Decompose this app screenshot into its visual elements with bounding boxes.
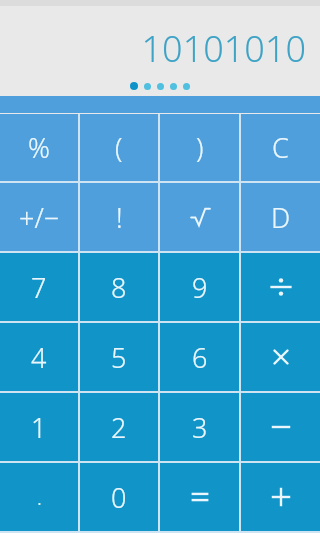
button[interactable]: 8: [80, 253, 158, 321]
staticText: 8: [111, 269, 127, 306]
staticText: 0: [111, 479, 127, 516]
button[interactable]: 10101010: [0, 24, 306, 73]
button[interactable]: ): [160, 114, 239, 181]
staticText: 5: [111, 339, 127, 376]
button[interactable]: ÷: [241, 253, 320, 321]
button[interactable]: !: [80, 183, 158, 251]
staticText: D: [271, 199, 291, 236]
button[interactable]: +/−: [0, 183, 78, 251]
button[interactable]: (: [80, 114, 158, 181]
button[interactable]: .: [0, 463, 78, 531]
staticText: !: [116, 199, 123, 236]
button[interactable]: 0: [80, 463, 158, 531]
staticText: ): [196, 129, 204, 166]
staticText: 4: [31, 339, 47, 376]
staticText: 10101010: [0, 24, 306, 73]
button[interactable]: √: [160, 183, 239, 251]
staticText: 2: [111, 409, 127, 446]
staticText: +/−: [19, 199, 60, 236]
button[interactable]: −: [241, 393, 320, 461]
button[interactable]: 7: [0, 253, 78, 321]
staticText: (: [115, 129, 123, 166]
button[interactable]: 2: [80, 393, 158, 461]
staticText: 9: [192, 269, 208, 306]
button[interactable]: 4: [0, 323, 78, 391]
button[interactable]: 5: [80, 323, 158, 391]
button[interactable]: C: [241, 114, 320, 181]
button[interactable]: 3: [160, 393, 239, 461]
button[interactable]: D: [241, 183, 320, 251]
button[interactable]: =: [160, 463, 239, 531]
staticText: 3: [192, 409, 208, 446]
button[interactable]: 1: [0, 393, 78, 461]
staticText: %: [28, 129, 50, 166]
staticText: .: [37, 484, 42, 511]
staticText: C: [272, 129, 289, 166]
button[interactable]: 9: [160, 253, 239, 321]
staticText: 1: [31, 409, 47, 446]
button[interactable]: 6: [160, 323, 239, 391]
button[interactable]: %: [0, 114, 78, 181]
button[interactable]: ×: [241, 323, 320, 391]
staticText: 6: [192, 339, 208, 376]
staticText: 7: [31, 269, 47, 306]
button[interactable]: +: [241, 463, 320, 531]
